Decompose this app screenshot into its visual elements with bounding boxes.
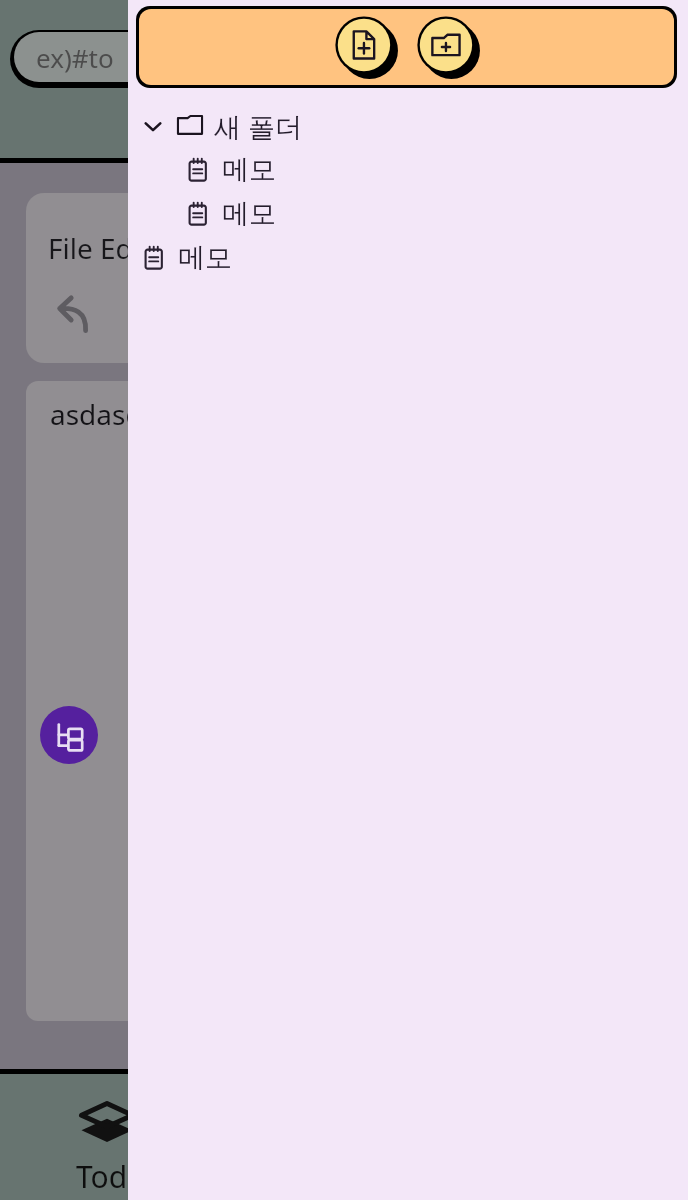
button[interactable] bbox=[10, 30, 310, 88]
button[interactable]: 새 폴더 bbox=[128, 104, 688, 148]
staticText: 메모 bbox=[178, 241, 232, 275]
button[interactable]: 메모 bbox=[128, 236, 688, 280]
button[interactable] bbox=[50, 1074, 230, 1200]
staticText: 새 폴더 bbox=[214, 108, 303, 145]
button[interactable]: 메모 bbox=[128, 148, 688, 192]
staticText: asdasd bbox=[50, 395, 143, 433]
staticText: ex)#to bbox=[36, 40, 114, 75]
button[interactable]: New folder bbox=[414, 13, 482, 81]
staticText: 메모 bbox=[222, 197, 276, 231]
staticText: Tod bbox=[76, 1156, 128, 1197]
staticText: 메모 bbox=[222, 153, 276, 187]
button[interactable]: New note bbox=[332, 13, 400, 81]
button[interactable]: 메모 bbox=[128, 192, 688, 236]
staticText: File Ed bbox=[48, 229, 133, 267]
button[interactable]: Folder tree bbox=[40, 706, 98, 764]
